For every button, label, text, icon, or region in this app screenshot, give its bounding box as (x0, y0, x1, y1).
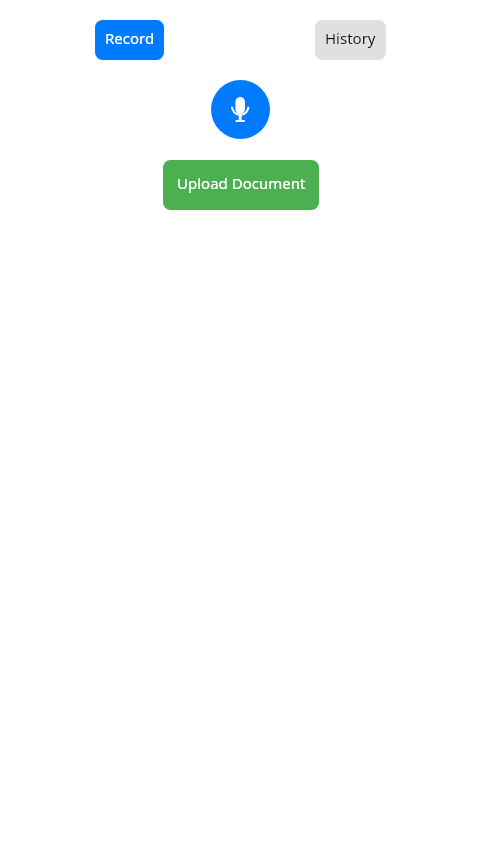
staticText: History (325, 28, 376, 48)
staticText: Upload Document (177, 173, 306, 193)
button[interactable]: Upload Document (163, 160, 319, 210)
button[interactable]: History (315, 20, 386, 60)
button[interactable]: Record voice note (211, 80, 270, 139)
button[interactable]: Record (95, 20, 164, 60)
staticText: Record (105, 28, 155, 48)
